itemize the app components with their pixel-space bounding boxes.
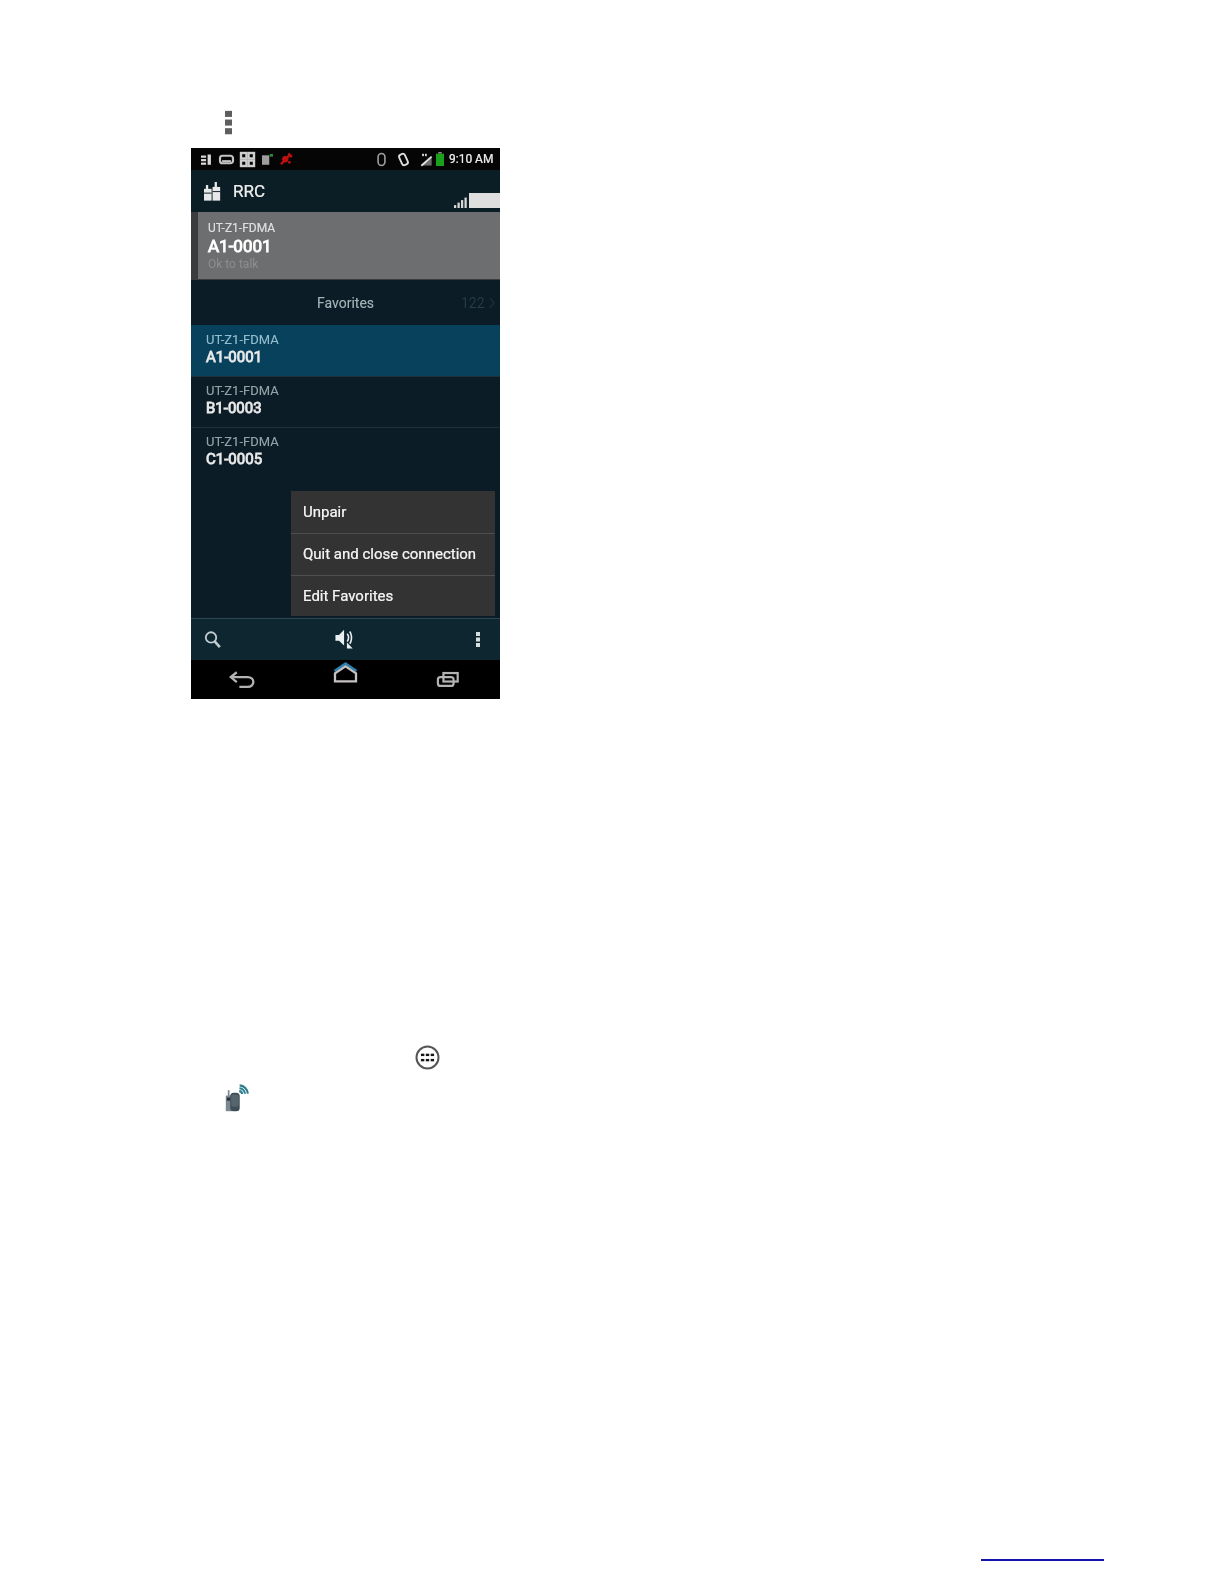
button[interactable]: Edit Favorites <box>291 575 495 616</box>
button[interactable]: UT-Z1-FDMA <box>191 325 500 376</box>
button[interactable]: All apps <box>415 1045 440 1070</box>
staticText: RRC <box>233 181 266 201</box>
button[interactable]: Favorites <box>191 280 500 325</box>
staticText: Unpair <box>303 503 347 521</box>
staticText: UT-Z1-FDMA <box>206 332 279 347</box>
staticText: A1-0001 <box>208 236 272 256</box>
button[interactable]: Radio app <box>220 1084 254 1118</box>
button[interactable]: Back <box>191 660 294 699</box>
staticText: 9:10 AM <box>449 152 494 166</box>
button[interactable]: Overflow menu <box>225 110 232 136</box>
staticText: C1-0005 <box>206 450 263 468</box>
button[interactable]: UT-Z1-FDMA <box>198 212 500 279</box>
staticText: UT-Z1-FDMA <box>206 434 279 449</box>
staticText: UT-Z1-FDMA <box>208 221 276 235</box>
button[interactable]: UT-Z1-FDMA <box>191 427 500 478</box>
staticText: Edit Favorites <box>303 587 394 605</box>
button[interactable]: Recent apps <box>397 660 500 699</box>
staticText: UT-Z1-FDMA <box>206 383 279 398</box>
button[interactable]: UT-Z1-FDMA <box>191 376 500 427</box>
button[interactable]: Quit and close connection <box>291 533 495 575</box>
button[interactable]: RRC <box>204 181 266 201</box>
staticText: Favorites <box>317 295 375 311</box>
staticText: B1-0003 <box>206 399 262 417</box>
staticText: Ok to talk <box>208 257 259 271</box>
button[interactable]: Volume <box>323 619 369 660</box>
button[interactable]: Unpair <box>291 491 495 533</box>
button[interactable]: More options <box>456 619 500 660</box>
button[interactable]: Search <box>191 619 235 660</box>
staticText: Quit and close connection <box>303 545 477 563</box>
button[interactable]: Home <box>294 660 397 699</box>
staticText: A1-0001 <box>206 348 263 366</box>
staticText: 122 <box>461 295 485 311</box>
